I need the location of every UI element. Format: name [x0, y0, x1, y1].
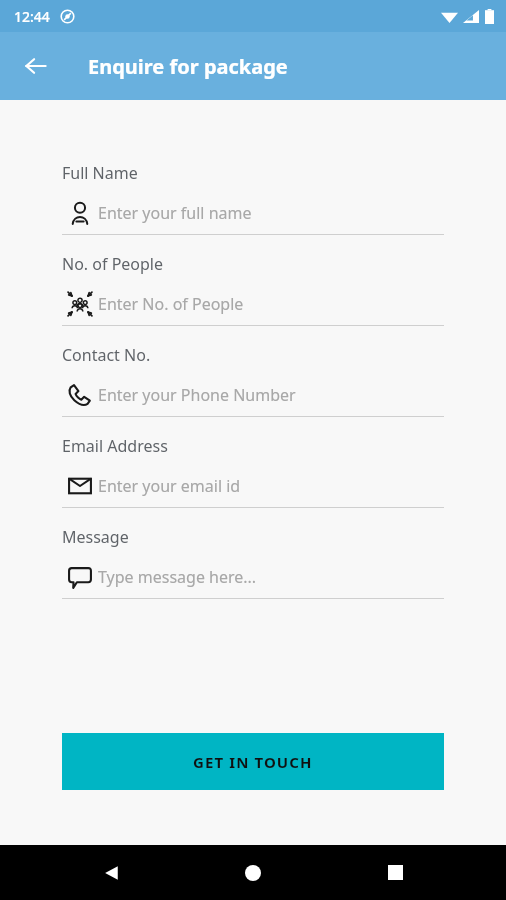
staticText: Email Address [62, 435, 168, 457]
staticText: Full Name [62, 162, 138, 184]
button[interactable]: Message [62, 526, 444, 599]
staticText: 12:44 [14, 7, 50, 26]
button[interactable]: Email Address [62, 435, 444, 508]
staticText: Enter your Phone Number [98, 384, 296, 406]
staticText: Enter your full name [98, 202, 252, 224]
button[interactable]: Home [223, 845, 283, 900]
button[interactable]: Back [82, 845, 142, 900]
button[interactable]: GET IN TOUCH [62, 733, 444, 790]
staticText: No. of People [62, 253, 164, 275]
staticText: Message [62, 526, 129, 548]
button[interactable]: Recent apps [365, 845, 425, 900]
button[interactable]: Back [12, 42, 60, 90]
button[interactable]: Full Name [62, 162, 444, 235]
staticText: Contact No. [62, 344, 151, 366]
staticText: GET IN TOUCH [193, 752, 313, 772]
button[interactable]: Contact No. [62, 344, 444, 417]
staticText: Enter No. of People [98, 293, 244, 315]
staticText: Enquire for package [88, 53, 288, 80]
button[interactable]: No. of People [62, 253, 444, 326]
staticText: Enter your email id [98, 475, 241, 497]
staticText: Type message here... [98, 566, 257, 588]
